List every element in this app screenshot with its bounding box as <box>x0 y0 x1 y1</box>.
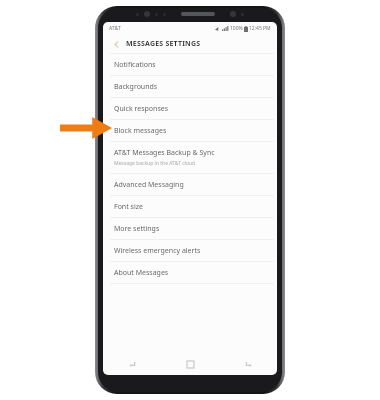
staticText: AT&T Messages Backup & Sync <box>114 148 215 158</box>
button[interactable]: Font size <box>103 196 277 217</box>
button[interactable]: Back <box>109 37 123 51</box>
button[interactable]: Notifications <box>103 54 277 75</box>
staticText: More settings <box>114 224 160 234</box>
button[interactable]: Advanced Messaging <box>103 174 277 195</box>
button[interactable]: AT&T Messages Backup & Sync <box>103 142 277 173</box>
staticText: About Messages <box>114 268 169 278</box>
staticText: Wireless emergency alerts <box>114 246 201 256</box>
button[interactable]: Recents <box>103 353 161 375</box>
staticText: 100% <box>230 25 243 32</box>
button[interactable]: Back <box>219 353 277 375</box>
staticText: Font size <box>114 202 143 212</box>
staticText: Message backup in the AT&T cloud <box>114 160 196 167</box>
button[interactable]: More settings <box>103 218 277 239</box>
button[interactable]: Backgrounds <box>103 76 277 97</box>
button[interactable]: Quick responses <box>103 98 277 119</box>
staticText: Backgrounds <box>114 82 158 92</box>
staticText: Advanced Messaging <box>114 180 184 190</box>
staticText: MESSAGES SETTINGS <box>126 39 201 49</box>
staticText: 12:45 PM <box>249 25 271 32</box>
staticText: Quick responses <box>114 104 169 114</box>
button[interactable]: Wireless emergency alerts <box>103 240 277 261</box>
staticText: Notifications <box>114 60 156 70</box>
staticText: AT&T <box>109 25 121 32</box>
button[interactable]: Block messages <box>103 120 277 141</box>
button[interactable]: About Messages <box>103 262 277 283</box>
button[interactable]: Home <box>161 353 219 375</box>
staticText: Block messages <box>114 126 167 136</box>
